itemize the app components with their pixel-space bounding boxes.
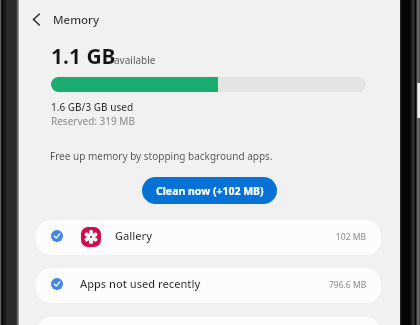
button[interactable]: Back xyxy=(23,6,49,32)
button[interactable]: Gallery xyxy=(36,220,381,255)
staticText: 1.6 GB/3 GB used xyxy=(51,100,134,114)
staticText: available xyxy=(114,53,156,67)
staticText: 796.6 MB xyxy=(329,279,367,291)
staticText: Clean now (+102 MB) xyxy=(156,184,264,198)
button[interactable]: Clean now (+102 MB) xyxy=(142,177,277,204)
staticText: Apps not used recently xyxy=(80,276,201,291)
staticText: Gallery xyxy=(115,228,153,243)
button[interactable]: Apps not used recently xyxy=(36,268,381,303)
staticText: Free up memory by stopping background ap… xyxy=(50,149,273,163)
staticText: 1.1 GB xyxy=(51,42,116,71)
staticText: Reserved: 319 MB xyxy=(51,114,135,128)
staticText: 102 MB xyxy=(336,231,367,243)
staticText: Memory xyxy=(53,12,100,28)
